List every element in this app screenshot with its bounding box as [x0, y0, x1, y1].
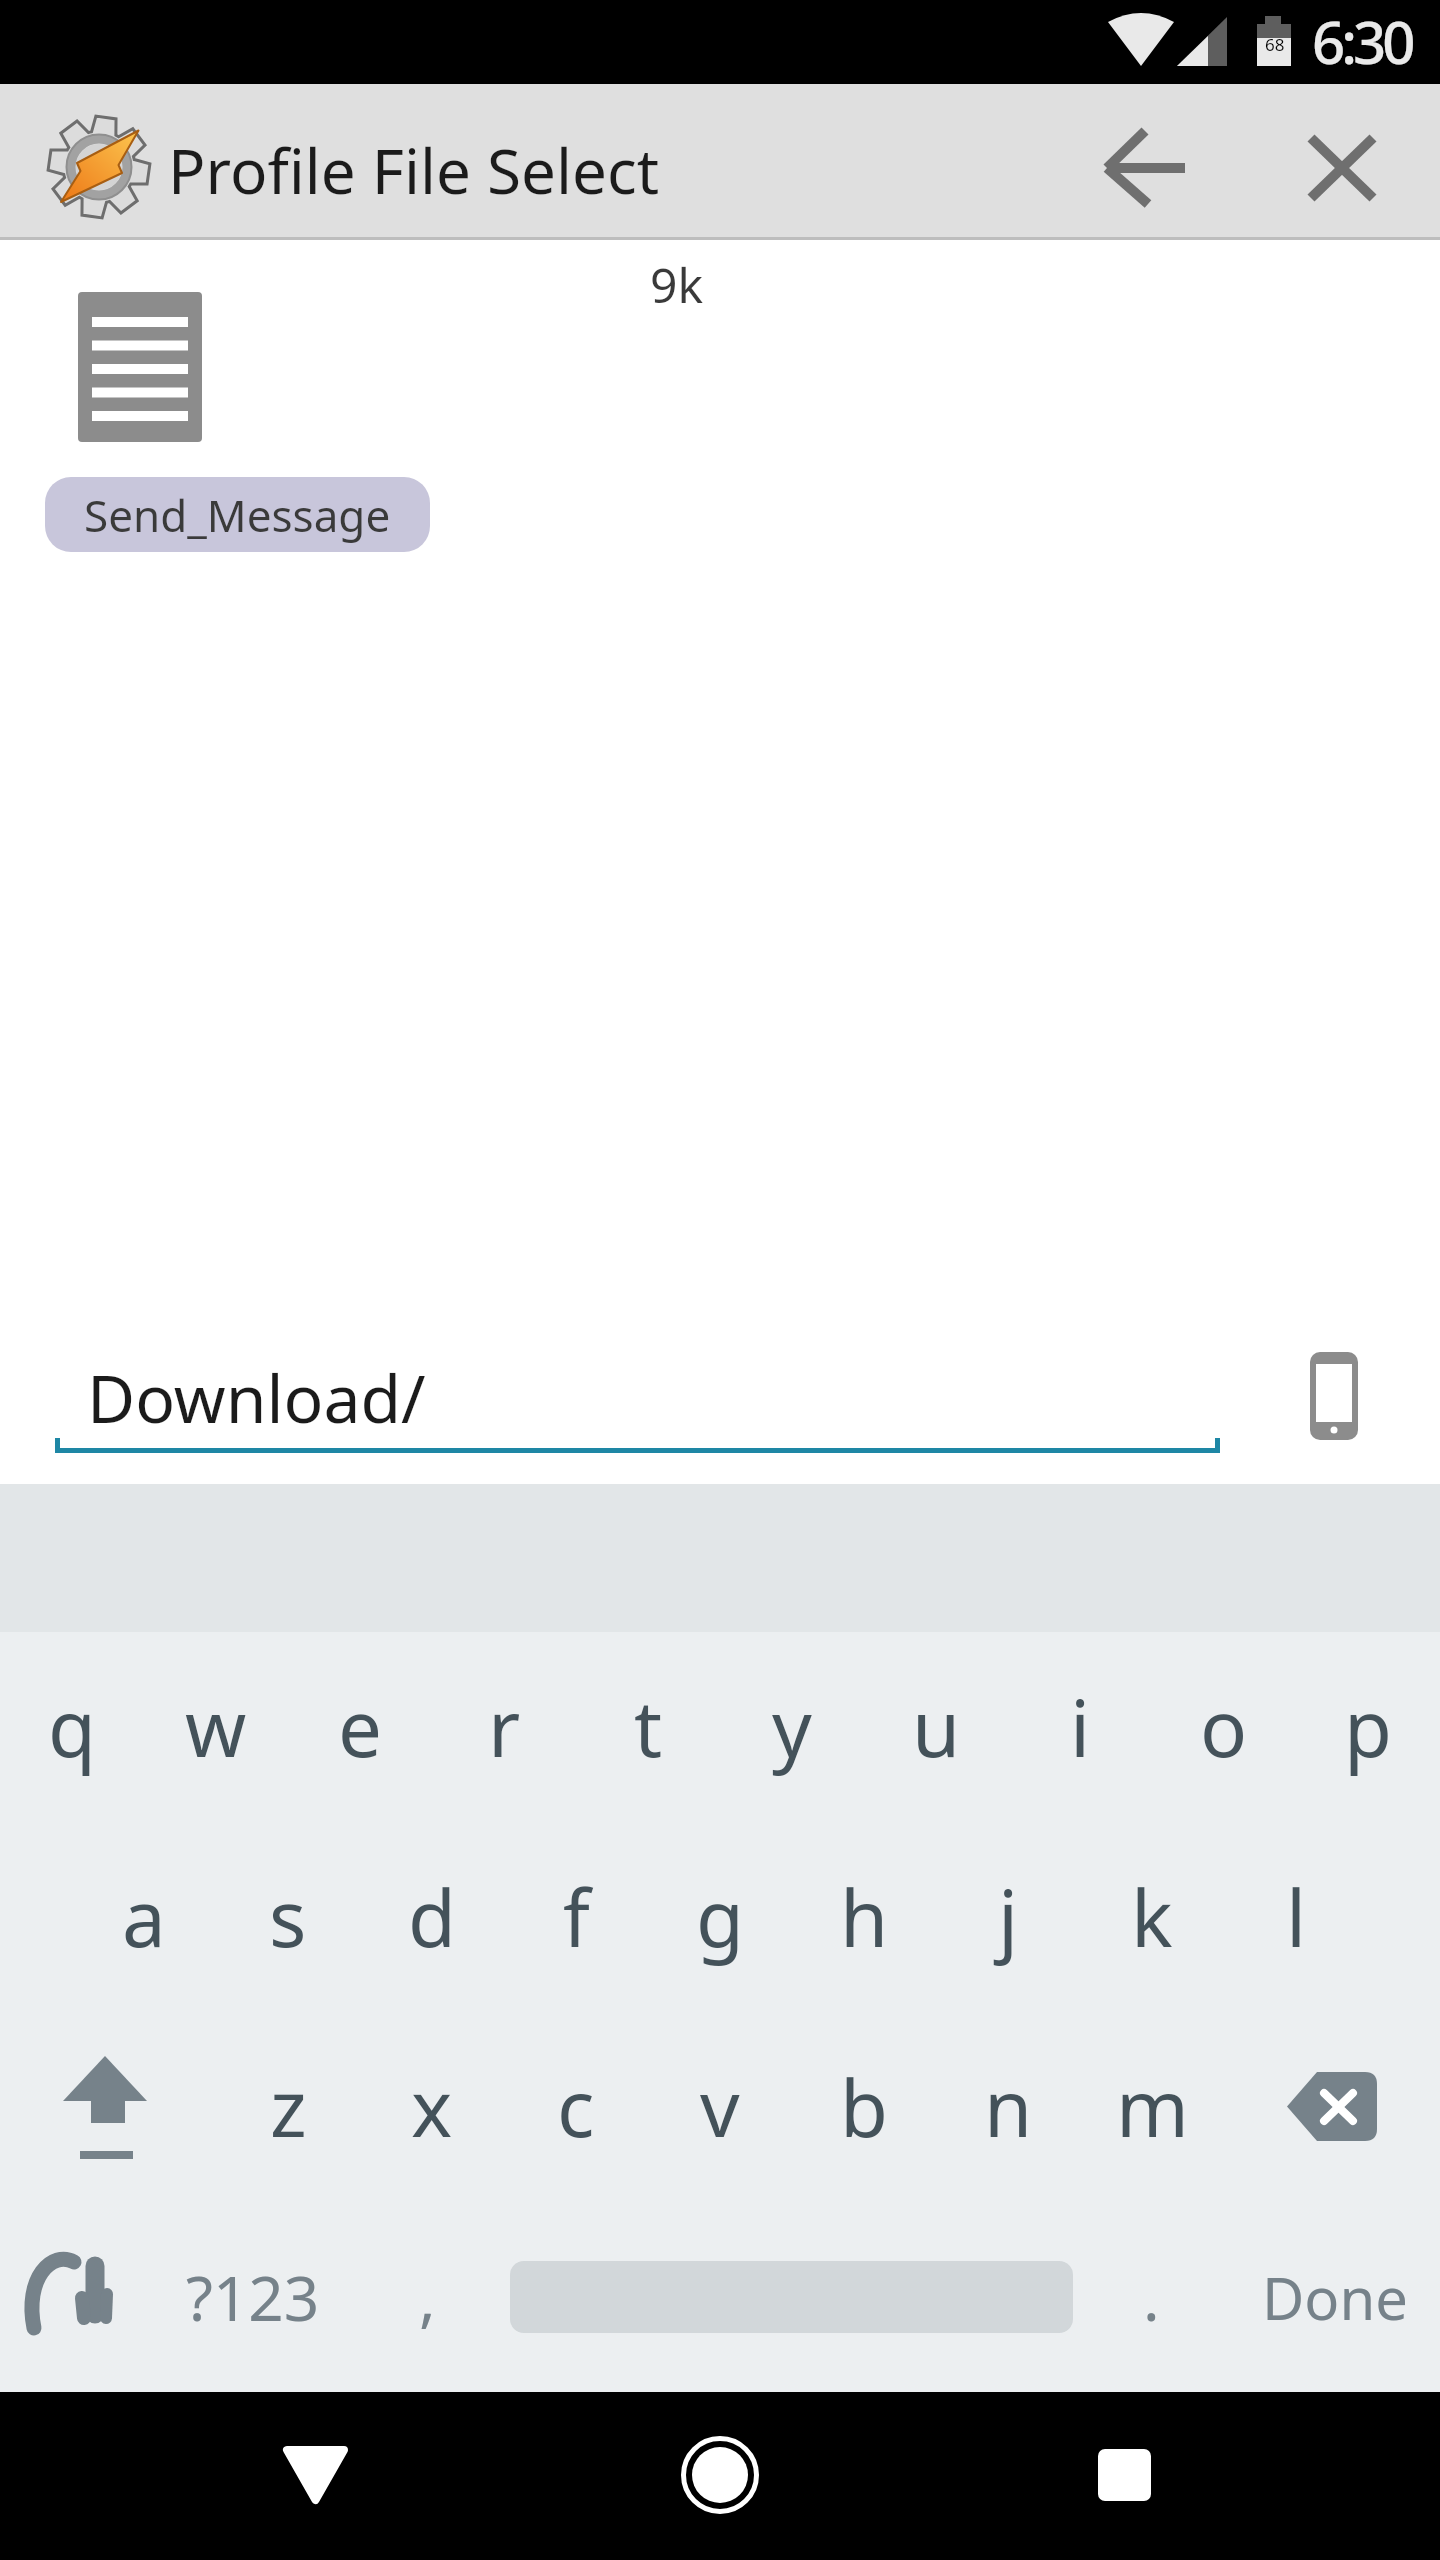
staticText: l — [1286, 1864, 1307, 1970]
staticText: b — [840, 2054, 888, 2160]
button[interactable]: n — [936, 2012, 1080, 2202]
staticText: c — [557, 2054, 595, 2160]
staticText: ?123 — [186, 2255, 320, 2339]
staticText: e — [338, 1674, 382, 1780]
button[interactable]: c — [504, 2012, 648, 2202]
button[interactable]: l — [1224, 1822, 1368, 2012]
button[interactable]: Send_Message — [45, 477, 430, 552]
staticText: j — [998, 1864, 1019, 1970]
button[interactable]: a — [72, 1822, 216, 2012]
button[interactable]: u — [864, 1632, 1008, 1822]
button[interactable]: w — [144, 1632, 288, 1822]
button[interactable]: s — [216, 1822, 360, 2012]
button[interactable]: i — [1008, 1632, 1152, 1822]
button[interactable]: z — [216, 2012, 360, 2202]
button[interactable] — [480, 2392, 960, 2560]
staticText: t — [634, 1674, 663, 1780]
button[interactable]: o — [1152, 1632, 1296, 1822]
staticText: f — [563, 1864, 590, 1970]
button[interactable] — [510, 2202, 1073, 2392]
button[interactable]: Done — [1230, 2202, 1440, 2392]
button[interactable]: p — [1296, 1632, 1440, 1822]
staticText: m — [1116, 2054, 1189, 2160]
staticText: q — [48, 1674, 96, 1780]
staticText: Download/ — [87, 1352, 426, 1442]
button[interactable]: ?123 — [160, 2202, 345, 2392]
staticText: p — [1344, 1674, 1392, 1780]
staticText: a — [122, 1864, 166, 1970]
button[interactable]: j — [936, 1822, 1080, 2012]
staticText: o — [1200, 1674, 1248, 1780]
button[interactable]: d — [360, 1822, 504, 2012]
staticText: 6:30 — [1312, 2, 1412, 81]
button[interactable]: f — [504, 1822, 648, 2012]
button[interactable] — [0, 2202, 160, 2392]
staticText: Profile File Select — [168, 128, 660, 212]
button[interactable] — [1224, 2012, 1440, 2202]
button[interactable]: g — [648, 1822, 792, 2012]
staticText: Send_Message — [84, 485, 391, 545]
staticText: , — [419, 2255, 436, 2339]
staticText: w — [185, 1674, 247, 1780]
button[interactable] — [1310, 1352, 1358, 1440]
staticText: 9k — [650, 252, 704, 317]
staticText: x — [411, 2054, 453, 2160]
button[interactable]: , — [345, 2202, 510, 2392]
staticText: y — [772, 1674, 812, 1780]
staticText: . — [1143, 2255, 1160, 2339]
button[interactable] — [1286, 112, 1398, 224]
staticText: i — [1070, 1674, 1091, 1780]
staticText: h — [840, 1864, 889, 1970]
button[interactable]: . — [1073, 2202, 1230, 2392]
staticText: 68 — [1265, 33, 1285, 56]
staticText: r — [488, 1674, 521, 1780]
button[interactable]: h — [792, 1822, 936, 2012]
staticText: Done — [1262, 2258, 1408, 2337]
button[interactable] — [0, 2392, 480, 2560]
button[interactable]: x — [360, 2012, 504, 2202]
button[interactable]: q — [0, 1632, 144, 1822]
staticText: u — [912, 1674, 961, 1780]
button[interactable]: b — [792, 2012, 936, 2202]
button[interactable]: e — [288, 1632, 432, 1822]
staticText: v — [700, 2054, 740, 2160]
button[interactable]: v — [648, 2012, 792, 2202]
button[interactable]: m — [1080, 2012, 1224, 2202]
staticText: s — [269, 1864, 307, 1970]
staticText: k — [1131, 1864, 1173, 1970]
button[interactable]: k — [1080, 1822, 1224, 2012]
button[interactable] — [1090, 112, 1202, 224]
staticText: n — [984, 2054, 1033, 2160]
staticText: z — [270, 2054, 307, 2160]
staticText: d — [408, 1864, 456, 1970]
button[interactable] — [960, 2392, 1440, 2560]
button[interactable] — [0, 2012, 216, 2202]
button[interactable]: y — [720, 1632, 864, 1822]
button[interactable]: r — [432, 1632, 576, 1822]
staticText: g — [696, 1864, 744, 1970]
button[interactable]: t — [576, 1632, 720, 1822]
